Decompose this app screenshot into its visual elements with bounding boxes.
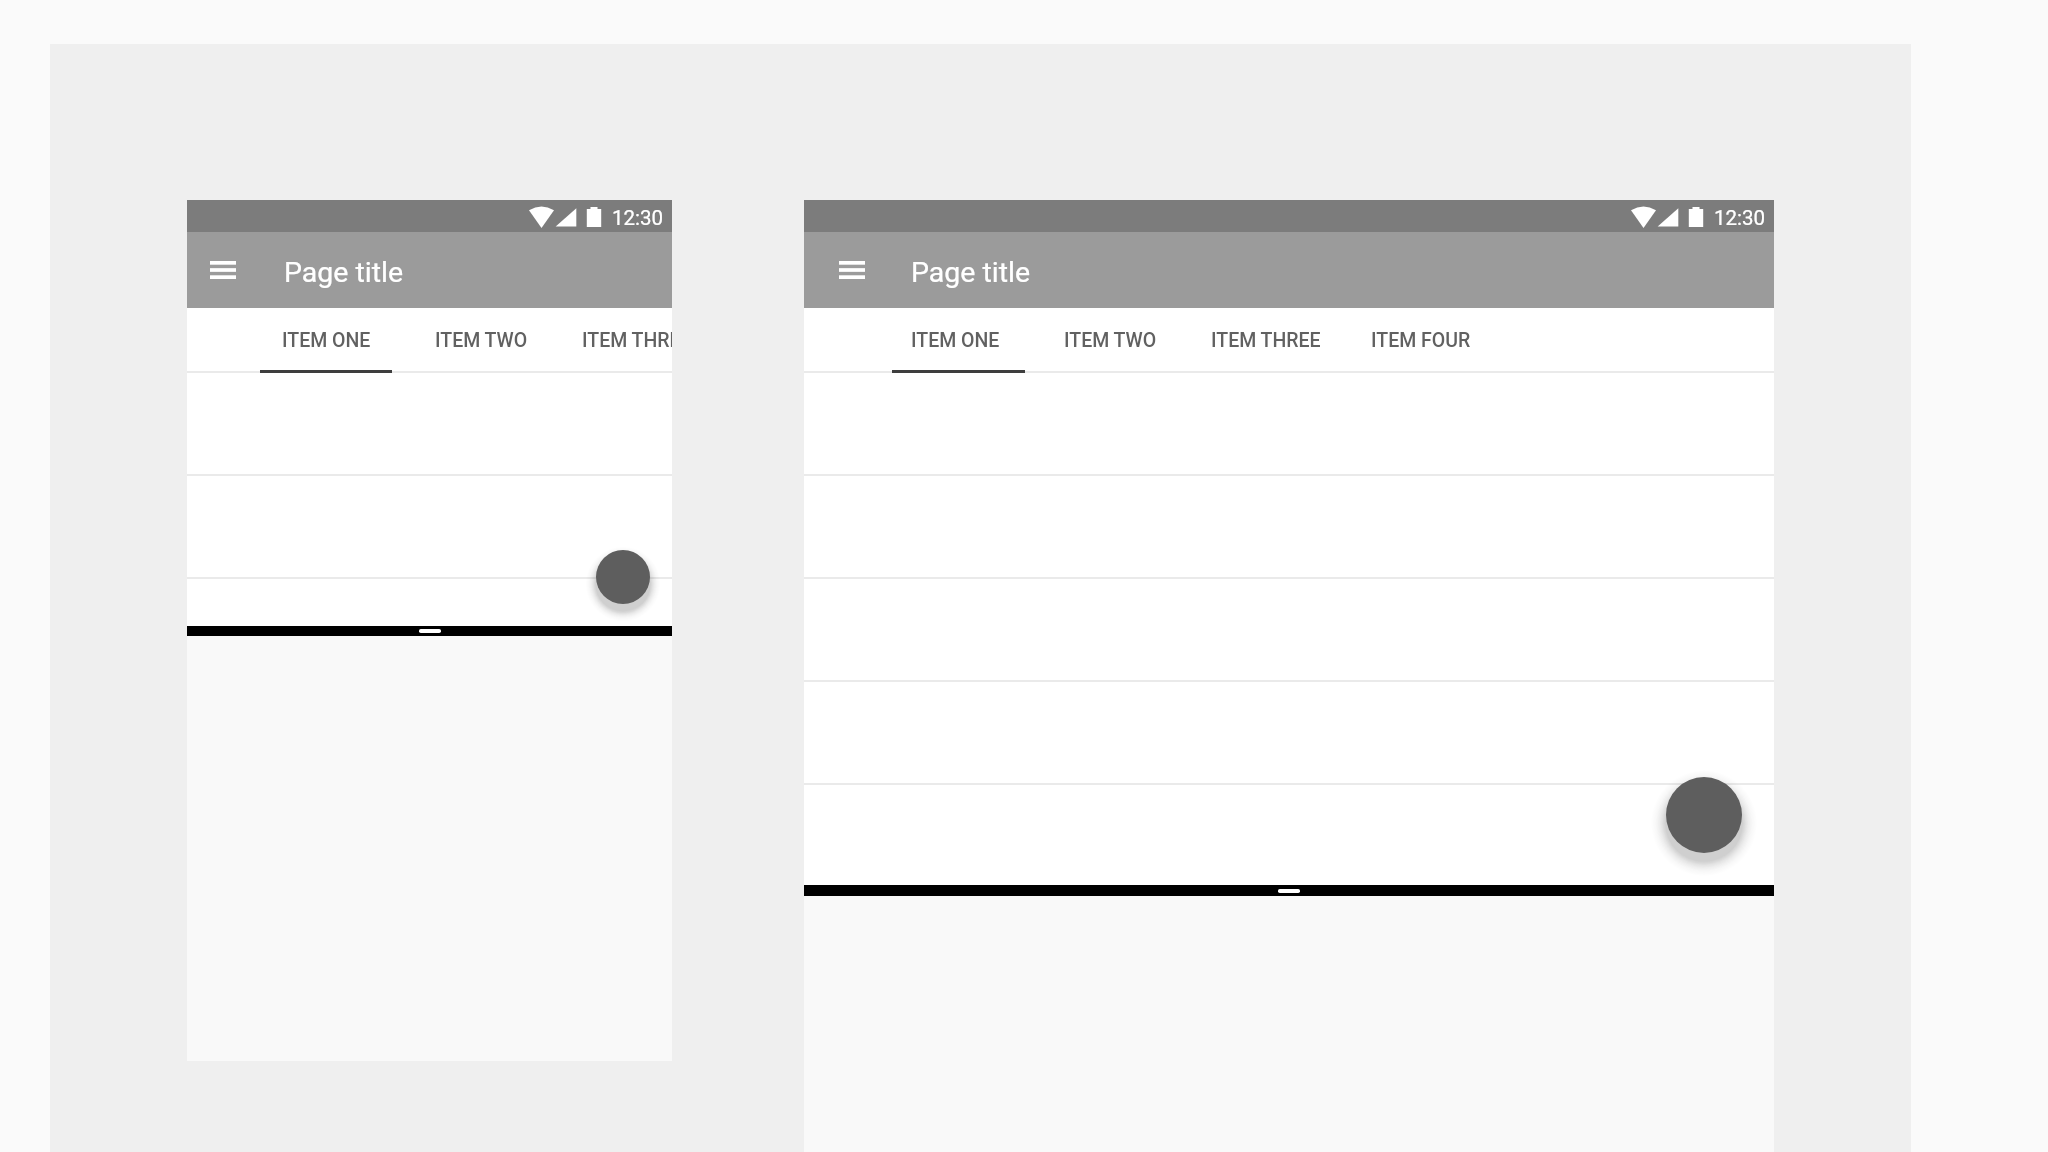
staticText: ITEM ONE — [911, 329, 1000, 352]
staticText: ITEM TWO — [435, 329, 528, 352]
button[interactable]: Open navigation menu — [203, 250, 243, 290]
button[interactable]: ITEM THREE — [1188, 308, 1343, 373]
button[interactable]: ITEM TWO — [404, 308, 559, 373]
staticText: ITEM ONE — [282, 329, 371, 352]
button[interactable]: ITEM ONE — [878, 308, 1033, 373]
staticText: ITEM THREE — [1211, 329, 1321, 352]
button[interactable]: ITEM THREE — [559, 308, 672, 373]
staticText: ITEM FOUR — [1371, 329, 1471, 352]
staticText: ITEM THREE — [582, 329, 672, 352]
button[interactable]: Open navigation menu — [832, 250, 872, 290]
staticText: ITEM TWO — [1064, 329, 1157, 352]
button[interactable]: ITEM TWO — [1033, 308, 1188, 373]
button[interactable] — [187, 476, 672, 579]
button[interactable]: Create — [596, 550, 650, 604]
button[interactable] — [804, 888, 1774, 896]
staticText: Page title — [911, 256, 1031, 289]
button[interactable] — [804, 785, 1774, 888]
button[interactable]: Create — [1666, 777, 1742, 853]
staticText: Page title — [284, 256, 404, 289]
staticText: 12:30 — [1714, 206, 1766, 230]
button[interactable]: ITEM ONE — [249, 308, 404, 373]
button[interactable] — [187, 579, 672, 636]
button[interactable] — [804, 682, 1774, 785]
staticText: 12:30 — [612, 206, 664, 230]
button[interactable]: ITEM FOUR — [1343, 308, 1498, 373]
